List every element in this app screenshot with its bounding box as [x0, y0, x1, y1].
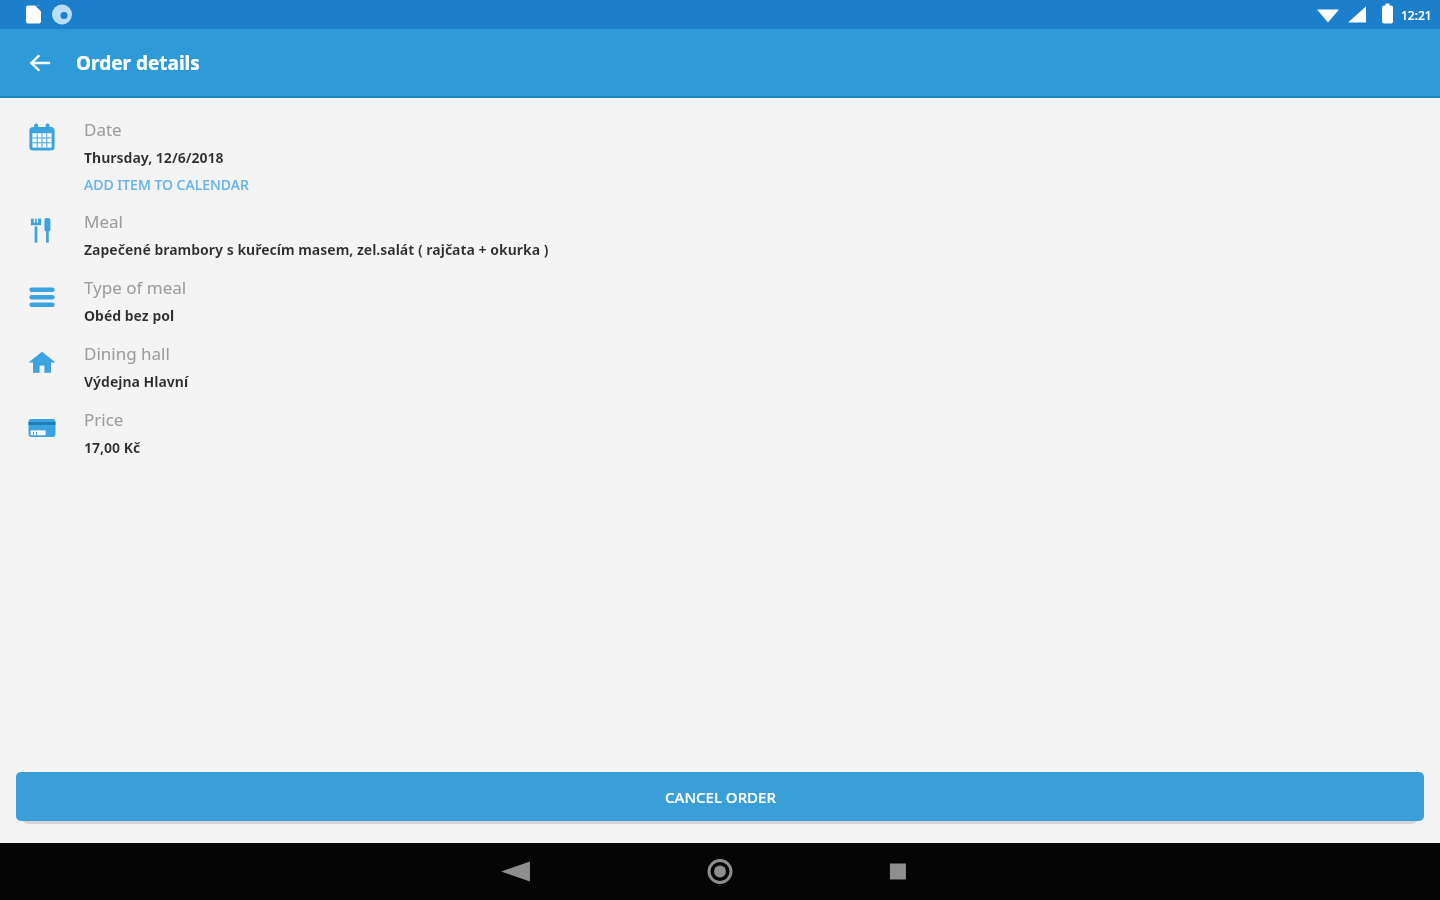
staticText: Thursday, 12/6/2018 [84, 148, 224, 167]
staticText: Order details [76, 50, 200, 76]
staticText: Date [84, 118, 122, 141]
button[interactable]: Back [16, 39, 64, 87]
staticText: 17,00 Kč [84, 438, 141, 457]
staticText: 12:21 [1401, 7, 1432, 23]
staticText: Výdejna Hlavní [84, 372, 189, 391]
staticText: Meal [84, 210, 123, 233]
staticText: Dining hall [84, 342, 170, 365]
staticText: Type of meal [84, 276, 187, 299]
button[interactable]: CANCEL ORDER [16, 772, 1424, 821]
button[interactable]: ADD ITEM TO CALENDAR [84, 175, 249, 194]
staticText: CANCEL ORDER [665, 787, 776, 807]
staticText: Zapečené brambory s kuřecím masem, zel.s… [84, 240, 549, 259]
staticText: Price [84, 408, 124, 431]
staticText: ADD ITEM TO CALENDAR [84, 175, 249, 194]
staticText: Obéd bez pol [84, 306, 175, 325]
